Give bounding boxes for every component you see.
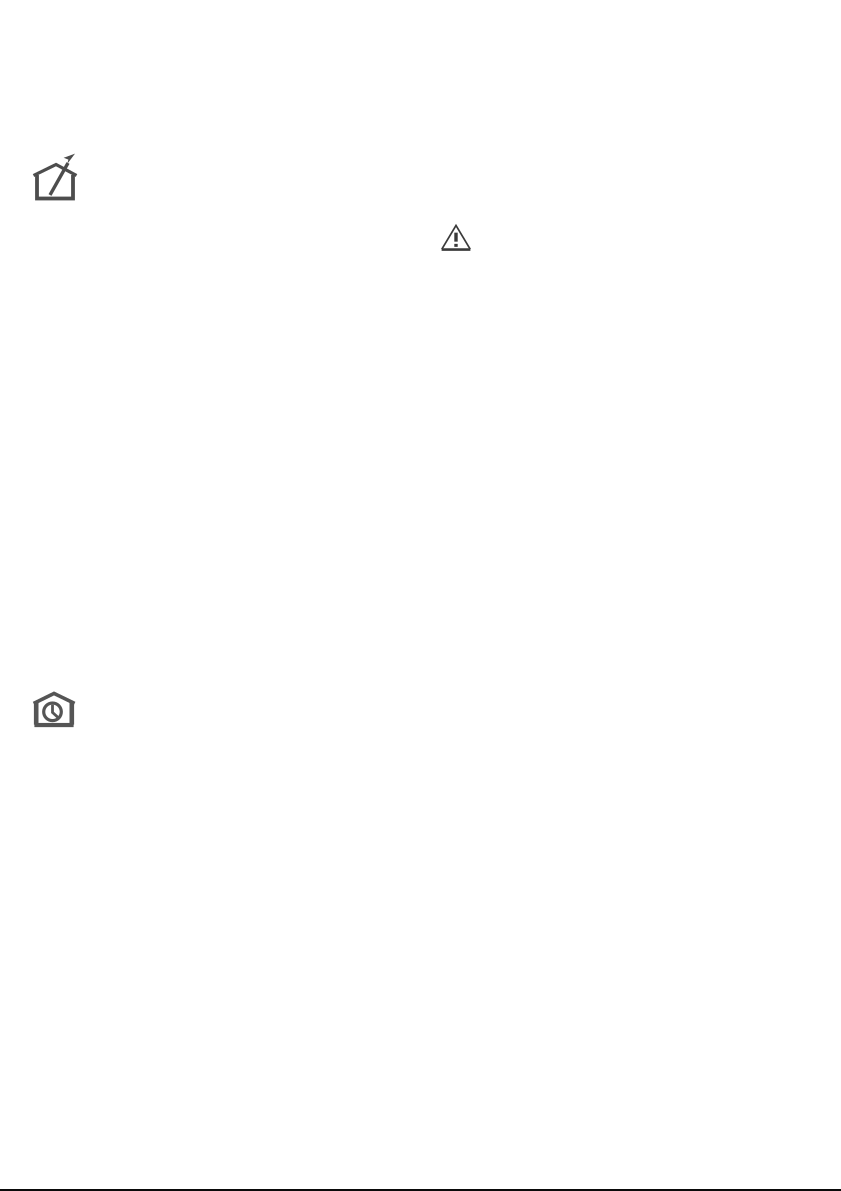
button[interactable]: Estimated value — [0, 96, 841, 224]
button[interactable]: Sale history — [0, 669, 841, 783]
